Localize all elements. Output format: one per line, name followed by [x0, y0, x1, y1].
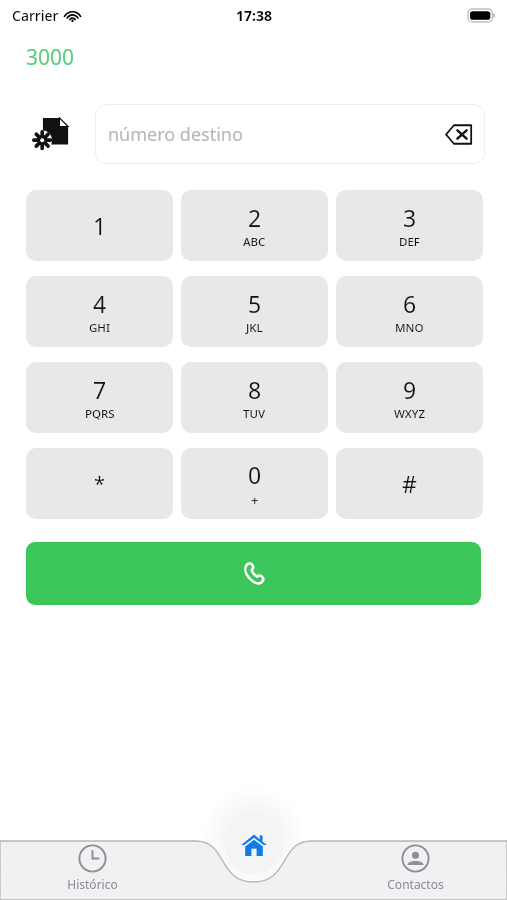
staticText: ABC — [243, 234, 266, 250]
staticText: MNO — [395, 320, 424, 336]
staticText: 1 — [93, 210, 107, 241]
staticText: DEF — [399, 234, 420, 250]
button[interactable]: Histórico — [42, 844, 142, 900]
button[interactable]: * — [26, 448, 173, 519]
staticText: TUV — [243, 406, 266, 422]
staticText: 17:38 — [236, 6, 272, 25]
staticText: 2 — [248, 202, 262, 233]
staticText: * — [94, 470, 106, 497]
staticText: Histórico — [67, 876, 118, 892]
button[interactable]: 0 — [181, 448, 328, 519]
staticText: JKL — [246, 320, 263, 336]
staticText: WXYZ — [394, 406, 426, 422]
button[interactable]: # — [336, 448, 483, 519]
button[interactable]: 3 — [336, 190, 483, 261]
button[interactable]: 7 — [26, 362, 173, 433]
button[interactable]: Contactos — [360, 844, 470, 900]
button[interactable]: Configuración — [28, 108, 78, 158]
button[interactable]: Inicio — [225, 816, 283, 874]
button[interactable]: 8 — [181, 362, 328, 433]
button[interactable]: Llamar — [26, 542, 481, 605]
staticText: GHI — [89, 320, 111, 336]
staticText: 3 — [403, 202, 417, 233]
staticText: 6 — [403, 288, 417, 319]
staticText: 9 — [403, 374, 417, 405]
button[interactable]: 9 — [336, 362, 483, 433]
staticText: Carrier — [12, 6, 59, 25]
staticText: 8 — [248, 374, 262, 405]
button[interactable]: número destino — [95, 104, 485, 164]
staticText: # — [402, 468, 417, 499]
staticText: Contactos — [387, 876, 444, 892]
button[interactable]: 1 — [26, 190, 173, 261]
staticText: 7 — [93, 374, 107, 405]
button[interactable]: 5 — [181, 276, 328, 347]
staticText: PQRS — [85, 406, 115, 422]
button[interactable]: 6 — [336, 276, 483, 347]
button[interactable]: Borrar — [441, 117, 475, 151]
staticText: 3000 — [26, 43, 75, 72]
staticText: + — [251, 491, 259, 509]
staticText: 5 — [248, 288, 262, 319]
staticText: 4 — [93, 288, 107, 319]
staticText: 0 — [248, 459, 262, 490]
button[interactable]: 2 — [181, 190, 328, 261]
staticText: número destino — [108, 122, 243, 147]
button[interactable]: 4 — [26, 276, 173, 347]
